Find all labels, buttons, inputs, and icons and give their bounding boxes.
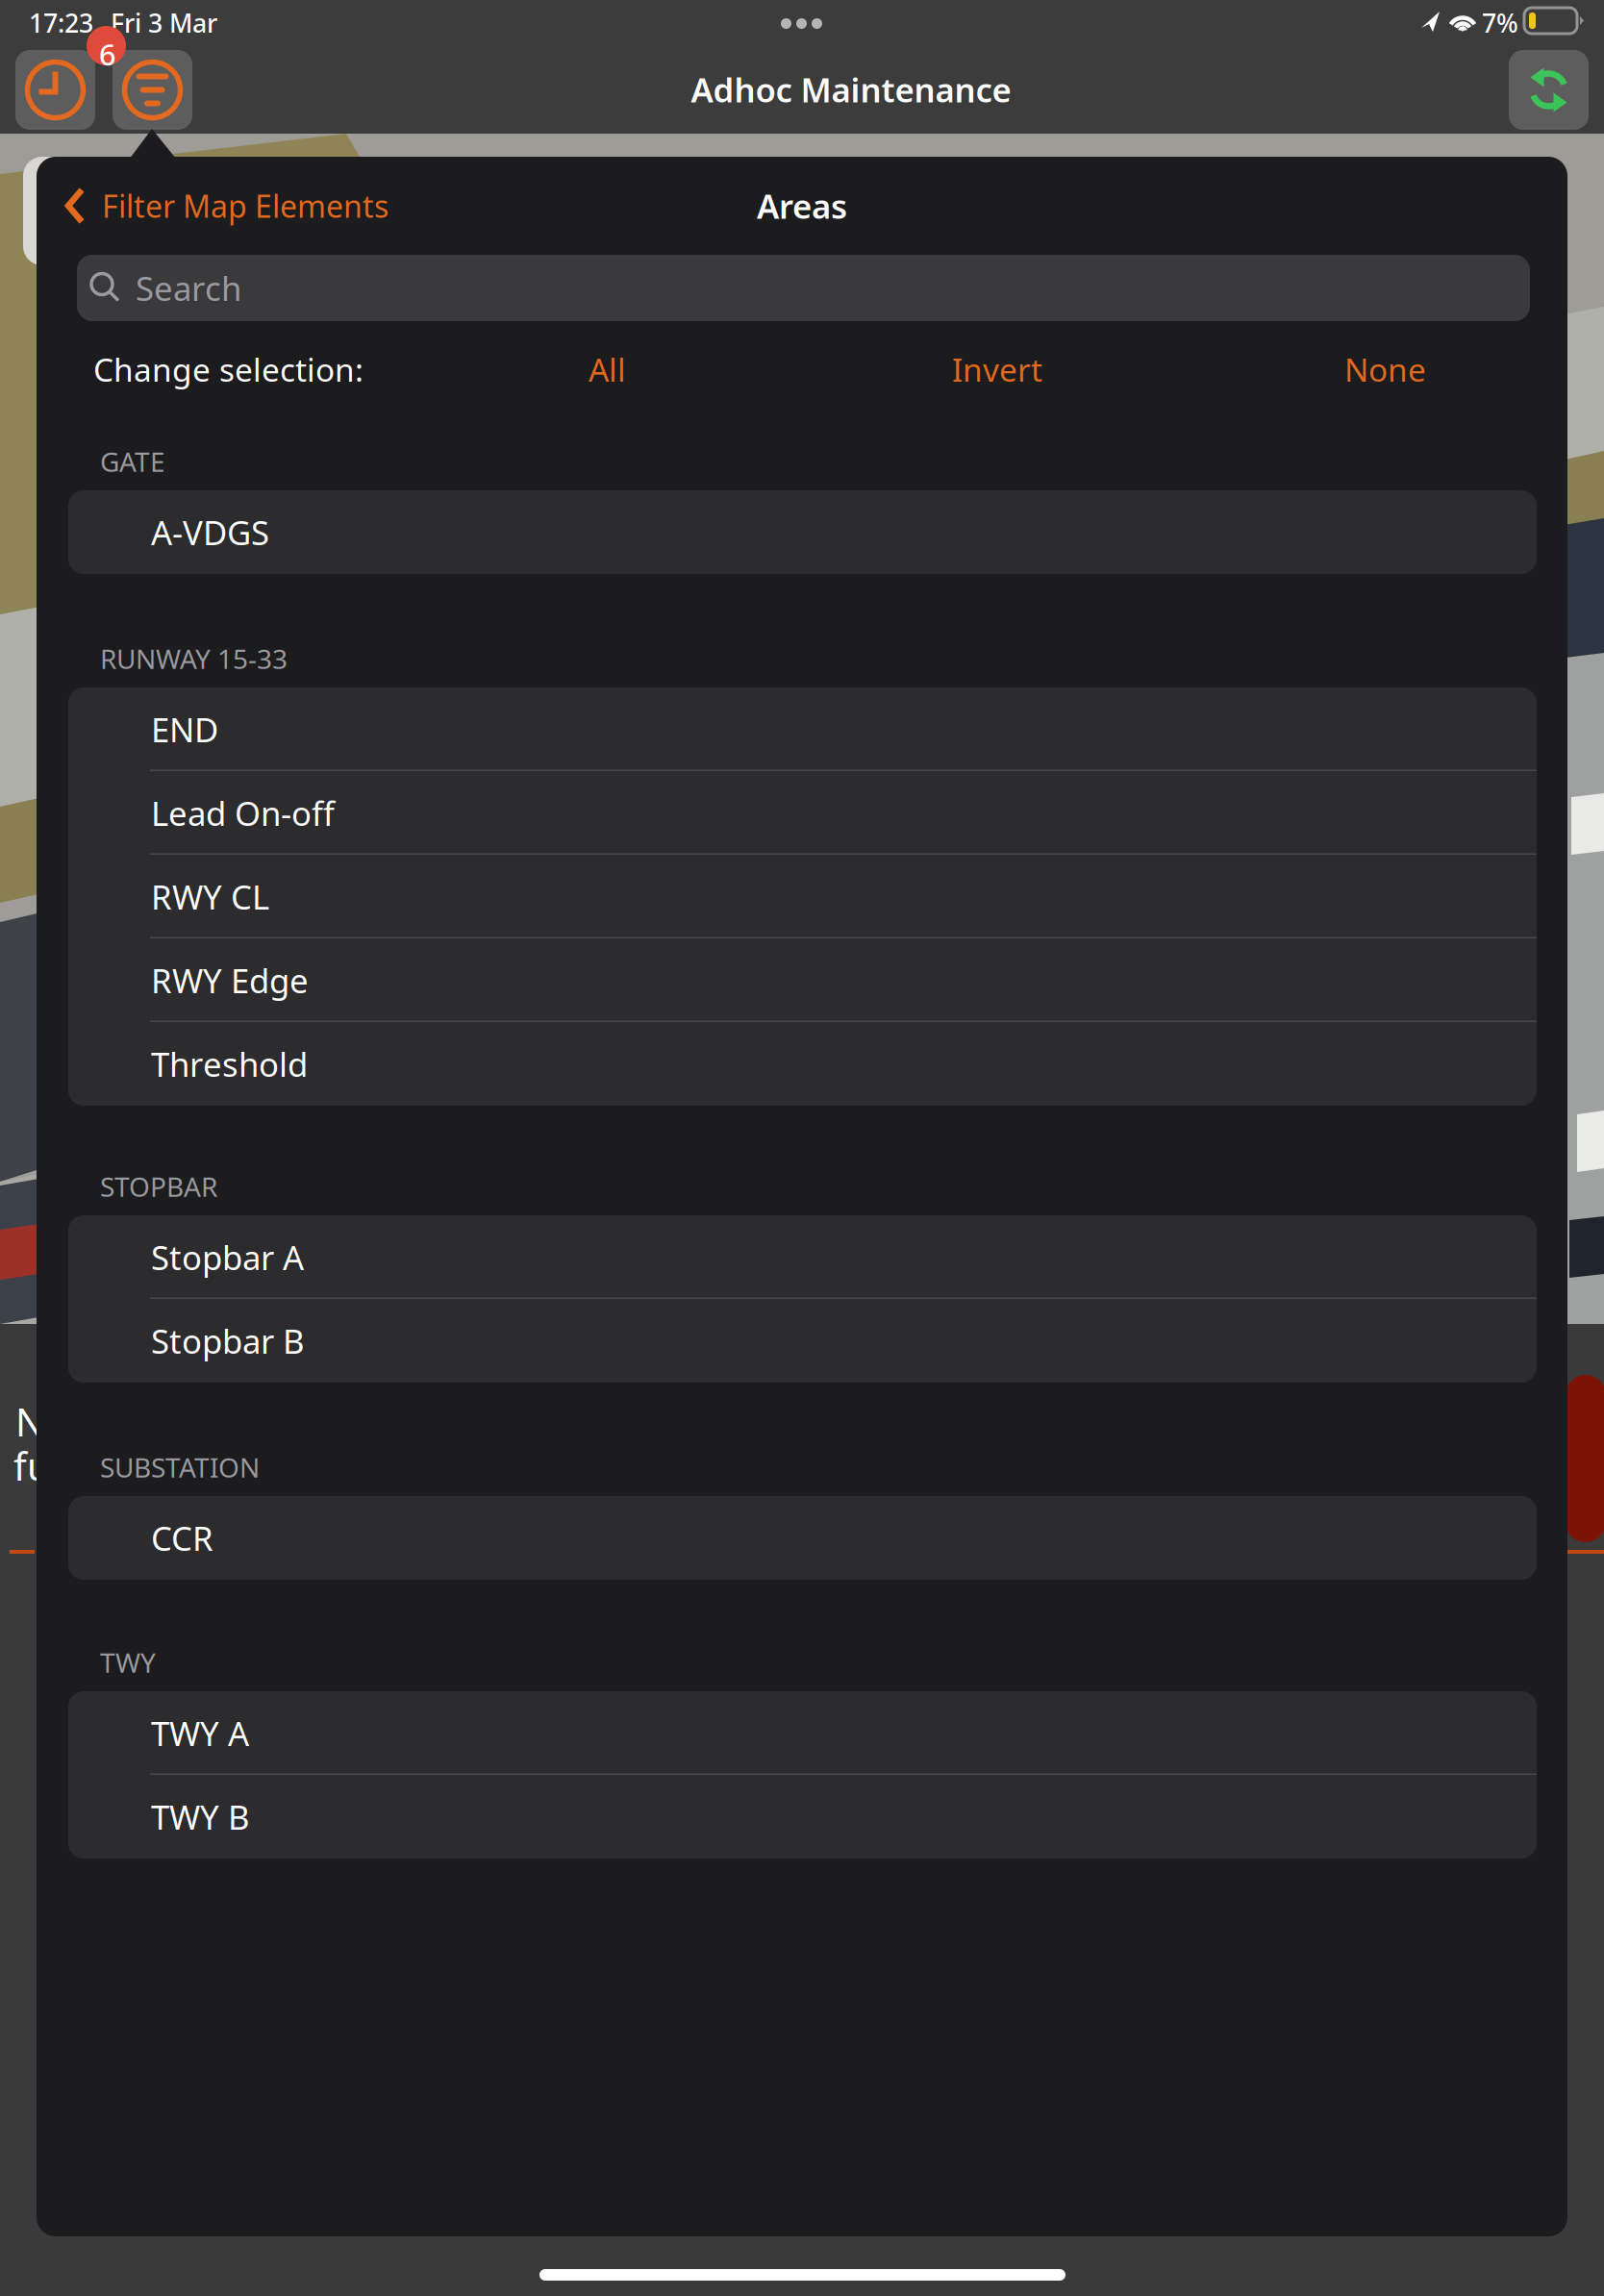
staticText: Change selection: (93, 348, 363, 391)
staticText: Threshold (151, 1042, 308, 1086)
button[interactable]: END (68, 687, 1537, 771)
staticText: TWY B (151, 1795, 250, 1839)
staticText: Search (136, 266, 241, 310)
button[interactable]: CCR (68, 1496, 1537, 1580)
button[interactable]: None (1316, 341, 1455, 397)
staticText: Stopbar B (151, 1319, 305, 1363)
button[interactable]: RWY Edge (68, 938, 1537, 1022)
staticText: CCR (151, 1516, 213, 1560)
button[interactable]: Lead On-off (68, 771, 1537, 855)
staticText: 7% (1482, 6, 1518, 40)
staticText: RUNWAY 15-33 (100, 641, 288, 676)
staticText: Stopbar A (151, 1235, 304, 1279)
staticText: TWY (100, 1645, 156, 1680)
button[interactable]: Invert (923, 341, 1071, 397)
staticText: STOPBAR (100, 1169, 217, 1204)
staticText: A-VDGS (151, 510, 269, 554)
staticText: None (1344, 348, 1426, 391)
button[interactable]: Filter map elements (113, 50, 192, 130)
staticText: Areas (757, 184, 847, 228)
staticText: 17:23 (29, 6, 93, 40)
staticText: Fri 3 Mar (111, 6, 217, 40)
button[interactable]: TWY B (68, 1775, 1537, 1859)
button[interactable]: Stopbar B (68, 1299, 1537, 1383)
button[interactable]: Threshold (68, 1022, 1537, 1106)
button[interactable]: A-VDGS (68, 490, 1537, 574)
staticText: Adhoc Maintenance (691, 67, 1011, 112)
staticText: Invert (952, 348, 1042, 391)
staticText: All (589, 348, 626, 391)
button[interactable]: Filter Map Elements (37, 176, 406, 236)
staticText: RWY Edge (151, 958, 309, 1002)
button[interactable]: RWY CL (68, 855, 1537, 938)
staticText: Filter Map Elements (102, 185, 388, 226)
staticText: GATE (100, 444, 165, 479)
button[interactable]: Sync (1509, 50, 1589, 130)
staticText: Lead On-off (151, 791, 335, 835)
staticText: N (15, 1396, 44, 1447)
button[interactable]: Stopbar A (68, 1215, 1537, 1299)
staticText: END (151, 707, 218, 751)
staticText: RWY CL (151, 874, 269, 919)
button[interactable]: All (560, 341, 655, 397)
button[interactable]: TWY A (68, 1691, 1537, 1775)
staticText: TWY A (151, 1711, 249, 1755)
staticText: 6 (99, 35, 116, 74)
staticText: SUBSTATION (100, 1449, 260, 1485)
button[interactable]: Recent history (15, 50, 95, 130)
staticText: fu (13, 1440, 51, 1491)
